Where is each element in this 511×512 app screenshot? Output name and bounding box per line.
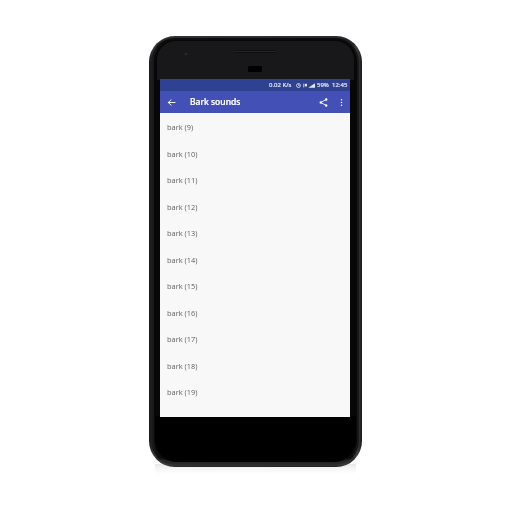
- staticText: bark (13): [167, 228, 198, 238]
- button[interactable]: Share: [314, 91, 333, 113]
- staticText: bark (19): [167, 387, 198, 397]
- staticText: bark (16): [167, 308, 198, 318]
- staticText: 59%: [317, 81, 329, 89]
- button[interactable]: bark (9): [160, 114, 350, 140]
- button[interactable]: Navigate up: [160, 91, 182, 113]
- button[interactable]: bark (13): [160, 220, 350, 246]
- staticText: bark (18): [167, 361, 198, 371]
- staticText: bark (15): [167, 281, 198, 291]
- button[interactable]: bark (18): [160, 353, 350, 379]
- staticText: bark (17): [167, 334, 198, 344]
- button[interactable]: bark (17): [160, 326, 350, 352]
- staticText: bark (10): [167, 149, 198, 159]
- button[interactable]: More options: [333, 91, 350, 113]
- staticText: 12:45: [332, 81, 348, 89]
- staticText: bark (12): [167, 202, 198, 212]
- staticText: Bark sounds: [190, 96, 241, 108]
- button[interactable]: bark (19): [160, 379, 350, 405]
- button[interactable]: bark (15): [160, 273, 350, 299]
- staticText: 0.02 K/s: [269, 81, 292, 89]
- button[interactable]: bark (14): [160, 247, 350, 273]
- button[interactable]: bark (12): [160, 194, 350, 220]
- button[interactable]: bark (16): [160, 300, 350, 326]
- staticText: bark (9): [167, 122, 194, 132]
- staticText: bark (11): [167, 175, 198, 185]
- button[interactable]: bark (11): [160, 167, 350, 193]
- staticText: bark (14): [167, 255, 198, 265]
- button[interactable]: bark (10): [160, 141, 350, 167]
